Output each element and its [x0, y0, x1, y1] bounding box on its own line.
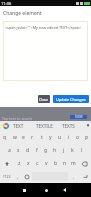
button[interactable]: i: [64, 131, 73, 144]
staticText: n: [63, 160, 67, 167]
button[interactable]: p: [82, 131, 91, 144]
button[interactable]: Recents: [19, 183, 30, 197]
button[interactable]: d: [23, 144, 32, 157]
button[interactable]: w: [10, 131, 19, 144]
button[interactable]: o: [73, 131, 82, 144]
staticText: y: [49, 134, 52, 141]
staticText: TEXTILE: [36, 123, 53, 129]
staticText: x: [27, 160, 30, 167]
button[interactable]: n: [60, 157, 69, 170]
button[interactable]: Shift: [0, 157, 14, 170]
staticText: q: [3, 134, 7, 141]
button[interactable]: Close: [38, 95, 50, 103]
button[interactable]: u: [55, 131, 64, 144]
staticText: Change element: [3, 10, 42, 17]
staticText: ?123: [3, 174, 11, 179]
button[interactable]: Home: [41, 183, 52, 197]
staticText: c: [36, 160, 39, 167]
staticText: b: [54, 160, 58, 167]
button[interactable]: g: [41, 144, 50, 157]
button[interactable]: Backspace: [78, 157, 91, 170]
button[interactable]: b: [51, 157, 60, 170]
staticText: u: [58, 134, 62, 141]
button[interactable]: .: [69, 170, 78, 183]
staticText: m: [71, 160, 76, 167]
button[interactable]: Update Changes: [53, 95, 89, 103]
button[interactable]: a: [5, 144, 14, 157]
button[interactable]: Enter: [78, 170, 91, 183]
button[interactable]: h: [50, 144, 59, 157]
button[interactable]: x: [24, 157, 33, 170]
button[interactable]: z: [14, 157, 24, 170]
staticText: Update Changes: [56, 97, 86, 102]
staticText: i: [68, 134, 70, 141]
staticText: Close: [39, 97, 49, 102]
button[interactable]: j: [59, 144, 68, 157]
button[interactable]: q: [0, 131, 10, 144]
staticText: j: [63, 147, 65, 154]
staticText: s: [17, 147, 20, 154]
button[interactable]: k: [68, 144, 77, 157]
button[interactable]: DONE: [70, 115, 87, 119]
button[interactable]: f: [32, 144, 41, 157]
staticText: k: [71, 147, 74, 154]
staticText: ,: [17, 174, 19, 180]
staticText: w: [13, 134, 17, 141]
staticText: f: [36, 147, 38, 154]
button[interactable]: t: [37, 131, 46, 144]
staticText: d: [26, 147, 30, 154]
staticText: a: [8, 147, 11, 154]
button[interactable]: y: [46, 131, 55, 144]
button[interactable]: c: [33, 157, 42, 170]
button[interactable]: Back: [59, 183, 70, 197]
staticText: h: [53, 147, 57, 154]
button[interactable]: ,: [13, 170, 22, 183]
staticText: 11:06: [1, 1, 12, 6]
button[interactable]: Emoji: [22, 170, 31, 183]
staticText: TEXTS: [62, 123, 75, 129]
staticText: g: [44, 147, 48, 154]
staticText: DONE: [75, 115, 83, 119]
staticText: o: [76, 134, 80, 141]
button[interactable]: r: [28, 131, 37, 144]
staticText: z: [18, 160, 21, 167]
staticText: Tap here to search: [2, 116, 33, 121]
staticText: .: [73, 174, 75, 180]
button[interactable]: ?123: [0, 170, 13, 183]
staticText: p: [85, 134, 89, 141]
staticText: l: [81, 147, 83, 154]
staticText: t: [41, 134, 43, 141]
staticText: v: [45, 160, 48, 167]
button[interactable]: m: [69, 157, 78, 170]
button[interactable]: v: [42, 157, 51, 170]
staticText: e: [22, 134, 25, 141]
staticText: TEXT: [13, 123, 24, 129]
staticText: r: [31, 134, 34, 141]
button[interactable]: l: [77, 144, 86, 157]
button[interactable]: e: [19, 131, 28, 144]
staticText: <span jsslot="">My new edited TEXT</span…: [5, 25, 82, 30]
button[interactable]: s: [14, 144, 23, 157]
